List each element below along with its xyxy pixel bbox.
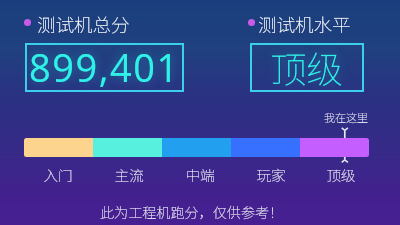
button[interactable]: 玩家	[235, 164, 306, 185]
staticText: 主流	[114, 164, 144, 185]
staticText: 玩家	[256, 164, 286, 185]
staticText: 此为工程机跑分，仅供参考！	[100, 202, 284, 222]
staticText: 测试机水平	[258, 11, 351, 38]
button[interactable]	[25, 43, 184, 92]
button[interactable]: 入门	[22, 164, 93, 185]
staticText: 顶级	[326, 164, 356, 185]
staticText: 测试机总分	[37, 11, 130, 38]
staticText: 中端	[185, 164, 215, 185]
button[interactable]	[250, 43, 364, 92]
button[interactable]: 顶级	[306, 164, 376, 185]
button[interactable]: 中端	[164, 164, 235, 185]
staticText: 顶级	[270, 41, 343, 94]
staticText: 899,401	[29, 41, 180, 93]
staticText: 我在这里	[324, 109, 368, 125]
button[interactable]: 主流	[93, 164, 164, 185]
staticText: 入门	[43, 164, 73, 185]
